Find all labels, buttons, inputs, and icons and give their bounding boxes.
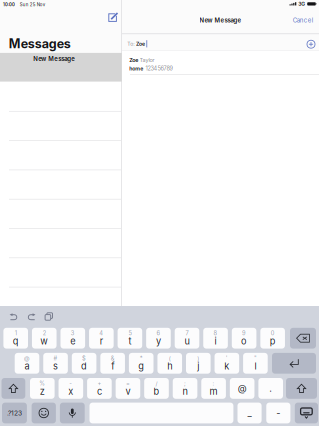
staticText: $ xyxy=(82,355,86,362)
button[interactable]: Shift xyxy=(286,378,317,399)
button[interactable]: Emoji xyxy=(32,403,56,423)
staticText: : xyxy=(213,380,215,387)
staticText: Messages xyxy=(9,36,71,51)
staticText: 4 xyxy=(99,330,103,337)
button[interactable]: 5 xyxy=(118,328,142,349)
button[interactable]: " xyxy=(243,353,268,374)
staticText: o xyxy=(241,335,247,347)
staticText: t xyxy=(128,335,131,347)
staticText: d xyxy=(81,361,87,372)
button[interactable]: Zoe xyxy=(122,51,319,75)
staticText: New Message xyxy=(33,55,75,62)
staticText: q xyxy=(13,335,19,347)
staticText: v xyxy=(125,386,130,397)
button[interactable]: Hide Keyboard xyxy=(295,403,318,423)
button[interactable]: Shift xyxy=(1,378,25,399)
staticText: New Message xyxy=(200,17,242,24)
button[interactable]: New Message xyxy=(0,53,122,82)
staticText: * xyxy=(140,355,143,362)
button[interactable]: $ xyxy=(72,353,96,374)
staticText: # xyxy=(53,355,57,362)
button[interactable]: / xyxy=(144,378,169,399)
button[interactable]: 3 xyxy=(60,328,85,349)
staticText: 8 xyxy=(214,330,218,337)
staticText: y xyxy=(156,335,161,347)
staticText: 6 xyxy=(156,330,160,337)
button[interactable]: Add contact xyxy=(303,36,319,52)
button[interactable]: Delete xyxy=(290,328,316,349)
staticText: = xyxy=(126,380,130,387)
staticText: - xyxy=(69,380,72,387)
staticText: 3 xyxy=(71,330,75,337)
staticText: r xyxy=(100,335,103,347)
staticText: 3G xyxy=(298,1,305,7)
staticText: 7 xyxy=(185,330,188,337)
staticText: a xyxy=(24,361,29,372)
staticText: + xyxy=(97,380,101,387)
button[interactable]: + xyxy=(87,378,112,399)
button[interactable]: ) xyxy=(186,353,211,374)
button[interactable]: Undo xyxy=(6,309,21,324)
button[interactable]: 2 xyxy=(32,328,56,349)
button[interactable]: Cancel xyxy=(288,13,318,27)
staticText: _ xyxy=(248,407,252,418)
staticText: h xyxy=(167,361,172,372)
staticText: @ xyxy=(24,355,30,362)
staticText: - xyxy=(276,407,280,418)
staticText: b xyxy=(153,386,159,397)
staticText: i xyxy=(215,335,217,347)
staticText: l xyxy=(254,361,256,372)
button[interactable]: = xyxy=(116,378,140,399)
button[interactable]: Dictate xyxy=(60,403,85,423)
staticText: 5 xyxy=(128,330,131,337)
button[interactable]: . xyxy=(258,378,283,399)
button[interactable]: # xyxy=(43,353,68,374)
button[interactable]: Paste xyxy=(41,309,56,324)
staticText: n xyxy=(183,386,188,397)
button[interactable]: ' xyxy=(214,353,239,374)
button[interactable]: 4 xyxy=(89,328,114,349)
button[interactable]: @ xyxy=(15,353,39,374)
staticText: @ xyxy=(238,383,247,394)
button[interactable]: _ xyxy=(237,403,262,423)
button[interactable]: 9 xyxy=(232,328,256,349)
button[interactable]: - xyxy=(58,378,83,399)
staticText: ' xyxy=(226,355,228,362)
staticText: 1 xyxy=(15,330,17,337)
staticText: Sun 25 Nov xyxy=(20,2,45,7)
staticText: w xyxy=(40,335,48,347)
staticText: Zoe xyxy=(136,41,145,47)
button[interactable]: * xyxy=(129,353,153,374)
button[interactable]: Numbers xyxy=(2,403,27,423)
button[interactable]: 0 xyxy=(260,328,285,349)
button[interactable]: - xyxy=(266,403,290,423)
button[interactable]: 7 xyxy=(175,328,199,349)
button[interactable]: % xyxy=(30,378,55,399)
button[interactable]: @ xyxy=(230,378,254,399)
button[interactable]: & xyxy=(100,353,125,374)
staticText: k xyxy=(224,361,229,372)
button[interactable]: 1 xyxy=(3,328,28,349)
button[interactable]: 8 xyxy=(203,328,228,349)
staticText: % xyxy=(39,380,45,387)
staticText: " xyxy=(254,355,257,362)
button[interactable]: Compose xyxy=(103,8,123,28)
staticText: ; xyxy=(184,380,186,387)
button[interactable]: : xyxy=(201,378,226,399)
button[interactable]: ( xyxy=(157,353,182,374)
button[interactable]: ; xyxy=(173,378,197,399)
staticText: 0 xyxy=(271,330,275,337)
staticText: x xyxy=(68,386,73,397)
button[interactable]: Redo xyxy=(24,309,39,324)
staticText: .?123 xyxy=(7,409,22,417)
staticText: j xyxy=(197,361,199,372)
staticText: To: xyxy=(127,41,134,47)
staticText: 9 xyxy=(242,330,246,337)
staticText: m xyxy=(210,386,218,397)
staticText: & xyxy=(111,355,115,362)
button[interactable]: Return xyxy=(272,353,316,374)
button[interactable]: 6 xyxy=(146,328,171,349)
staticText: 2 xyxy=(43,330,46,337)
staticText: Zoe xyxy=(129,57,138,63)
